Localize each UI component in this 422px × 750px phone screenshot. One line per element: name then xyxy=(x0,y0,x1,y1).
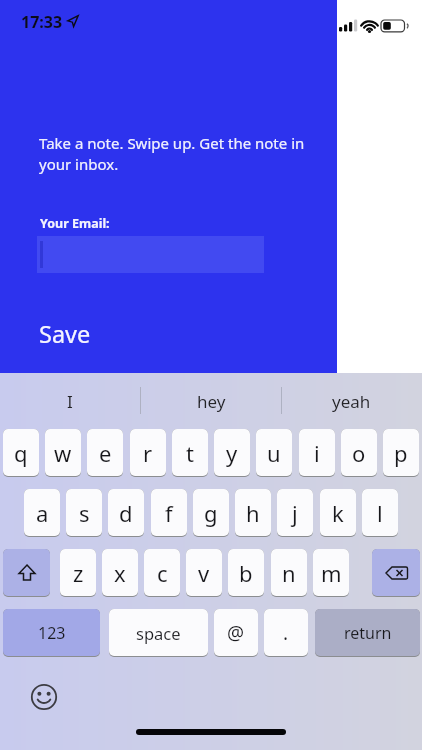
button[interactable]: h xyxy=(235,489,271,536)
staticText: m xyxy=(321,558,342,588)
staticText: h xyxy=(246,498,260,528)
staticText: v xyxy=(198,558,210,588)
staticText: @ xyxy=(227,620,245,646)
staticText: b xyxy=(239,558,253,588)
button[interactable]: i xyxy=(299,429,335,476)
button[interactable]: yeah xyxy=(281,381,421,421)
button[interactable]: p xyxy=(383,429,419,476)
staticText: 123 xyxy=(38,622,66,644)
staticText: j xyxy=(292,498,298,528)
staticText: l xyxy=(377,498,383,528)
staticText: d xyxy=(119,498,133,528)
staticText: k xyxy=(332,498,344,528)
staticText: i xyxy=(314,438,320,468)
staticText: g xyxy=(204,498,218,528)
button[interactable]: n xyxy=(271,549,307,596)
staticText: f xyxy=(165,498,173,528)
staticText: n xyxy=(282,558,296,588)
staticText: hey xyxy=(197,390,226,413)
staticText: a xyxy=(36,498,49,528)
button[interactable]: z xyxy=(60,549,96,596)
button[interactable]: o xyxy=(341,429,377,476)
button[interactable]: x xyxy=(102,549,138,596)
button[interactable]: b xyxy=(228,549,264,596)
button[interactable] xyxy=(30,683,58,711)
button[interactable]: a xyxy=(24,489,60,536)
button[interactable]: m xyxy=(313,549,349,596)
button[interactable]: w xyxy=(45,429,81,476)
staticText: yeah xyxy=(332,390,371,413)
button[interactable]: d xyxy=(108,489,144,536)
staticText: 17:33 xyxy=(21,11,63,33)
button[interactable]: j xyxy=(277,489,313,536)
button[interactable]: c xyxy=(144,549,180,596)
button[interactable]: y xyxy=(214,429,250,476)
staticText: e xyxy=(99,438,112,468)
button[interactable]: k xyxy=(320,489,356,536)
button[interactable]: s xyxy=(66,489,102,536)
staticText: z xyxy=(73,558,84,588)
staticText: w xyxy=(54,438,72,468)
staticText: Your Email: xyxy=(40,215,110,232)
staticText: p xyxy=(394,438,408,468)
staticText: o xyxy=(352,438,366,468)
staticText: I xyxy=(67,390,73,413)
staticText: q xyxy=(14,438,28,468)
button[interactable]: e xyxy=(87,429,123,476)
button[interactable]: v xyxy=(186,549,222,596)
button[interactable]: @ xyxy=(214,609,258,656)
button[interactable] xyxy=(3,549,50,596)
button[interactable]: return xyxy=(315,609,420,656)
button[interactable]: g xyxy=(193,489,229,536)
button[interactable] xyxy=(372,549,420,596)
staticText: t xyxy=(186,438,194,468)
button[interactable]: space xyxy=(109,609,208,656)
button[interactable]: I xyxy=(0,381,140,421)
staticText: r xyxy=(143,438,153,468)
button[interactable]: f xyxy=(151,489,187,536)
staticText: space xyxy=(136,622,181,644)
staticText: c xyxy=(157,558,168,588)
staticText: y xyxy=(226,438,238,468)
button[interactable]: . xyxy=(264,609,308,656)
staticText: Take a note. Swipe up. Get the note in y… xyxy=(39,133,305,175)
button[interactable]: r xyxy=(130,429,166,476)
staticText: x xyxy=(114,558,126,588)
button[interactable]: 123 xyxy=(3,609,100,656)
staticText: s xyxy=(79,498,90,528)
button[interactable]: q xyxy=(3,429,39,476)
staticText: u xyxy=(267,438,281,468)
staticText: . xyxy=(283,620,289,646)
button[interactable]: hey xyxy=(141,381,281,421)
button[interactable]: l xyxy=(362,489,398,536)
button[interactable]: u xyxy=(256,429,292,476)
button[interactable]: t xyxy=(172,429,208,476)
staticText: return xyxy=(344,622,392,644)
button[interactable]: Save xyxy=(39,318,91,350)
